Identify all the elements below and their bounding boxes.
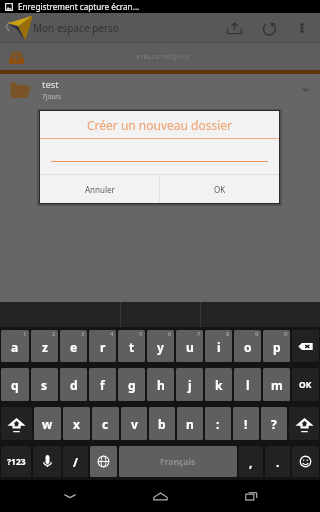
button[interactable]: Upload: [216, 13, 252, 43]
staticText: 1: [23, 330, 27, 338]
button[interactable]: Home: [139, 480, 181, 512]
button[interactable]: Hide keyboard: [49, 480, 91, 512]
staticText: :: [216, 416, 220, 432]
staticText: u: [186, 339, 194, 355]
button[interactable]: t: [118, 330, 145, 362]
button[interactable]: p: [263, 330, 290, 362]
staticText: f: [100, 377, 105, 393]
staticText: Créer un nouveau dossier: [87, 117, 233, 133]
button[interactable]: a: [1, 330, 29, 362]
button[interactable]: More options: [286, 13, 318, 43]
staticText: 3: [81, 330, 85, 338]
staticText: q: [11, 377, 19, 393]
staticText: h: [157, 377, 165, 393]
button[interactable]: z: [31, 330, 58, 362]
button[interactable]: shift: [1, 407, 32, 440]
button[interactable]: Recent apps: [230, 480, 272, 512]
staticText: 4: [110, 330, 114, 338]
staticText: z: [42, 339, 48, 355]
staticText: l: [246, 377, 250, 393]
staticText: b: [158, 416, 166, 432]
button[interactable]: .: [265, 446, 290, 477]
button[interactable]: g: [118, 368, 145, 401]
staticText: 7jours: [42, 92, 62, 101]
staticText: r: [100, 339, 106, 355]
button[interactable]: q: [1, 368, 29, 401]
button[interactable]: Navigate up: [0, 13, 33, 43]
button[interactable]: i: [205, 330, 232, 362]
staticText: 6: [168, 330, 172, 338]
staticText: e: [70, 339, 78, 355]
button[interactable]: c: [92, 407, 119, 440]
button[interactable]: r: [89, 330, 116, 362]
button[interactable]: e: [60, 330, 87, 362]
button[interactable]: test: [0, 74, 320, 105]
staticText: test: [42, 78, 59, 91]
button[interactable]: d: [60, 368, 87, 401]
button[interactable]: Refresh: [252, 13, 286, 43]
button[interactable]: j: [176, 368, 203, 401]
button[interactable]: shift: [289, 407, 319, 440]
button[interactable]: :: [205, 407, 231, 440]
staticText: w: [42, 416, 53, 432]
staticText: ,: [249, 454, 253, 470]
button[interactable]: u: [176, 330, 203, 362]
button[interactable]: !: [233, 407, 259, 440]
staticText: /: [73, 454, 78, 470]
staticText: x: [73, 416, 80, 432]
button[interactable]: h: [147, 368, 174, 401]
staticText: 9: [255, 330, 259, 338]
button[interactable]: BIBLIOTHÈQUES: [0, 43, 320, 70]
button[interactable]: k: [205, 368, 232, 401]
button[interactable]: l: [234, 368, 261, 401]
button[interactable]: b: [149, 407, 175, 440]
button[interactable]: Français: [119, 446, 237, 477]
staticText: g: [128, 377, 136, 393]
staticText: 0: [284, 330, 288, 338]
staticText: o: [244, 339, 252, 355]
button[interactable]: OK: [160, 175, 279, 203]
staticText: .: [276, 454, 280, 470]
button[interactable]: mic: [33, 446, 61, 477]
staticText: !: [244, 416, 248, 432]
button[interactable]: ?123: [1, 446, 31, 477]
staticText: 2: [52, 330, 56, 338]
staticText: OK: [299, 379, 312, 391]
button[interactable]: v: [121, 407, 147, 440]
button[interactable]: Annuler: [40, 175, 159, 203]
staticText: n: [186, 416, 194, 432]
staticText: j: [188, 377, 192, 393]
staticText: 5: [139, 330, 143, 338]
staticText: 8: [226, 330, 230, 338]
button[interactable]: s: [31, 368, 58, 401]
staticText: Français: [160, 456, 196, 468]
staticText: v: [131, 416, 138, 432]
button[interactable]: backspace: [292, 330, 319, 362]
button[interactable]: n: [177, 407, 203, 440]
staticText: s: [41, 377, 48, 393]
button[interactable]: x: [63, 407, 90, 440]
button[interactable]: m: [263, 368, 290, 401]
staticText: m: [271, 377, 283, 393]
staticText: ?: [271, 416, 277, 432]
button[interactable]: OK: [292, 368, 319, 401]
button[interactable]: globe: [90, 446, 117, 477]
staticText: d: [70, 377, 78, 393]
staticText: Enregistrement capture écran...: [18, 1, 140, 12]
staticText: p: [273, 339, 281, 355]
staticText: 7: [197, 330, 201, 338]
button[interactable]: ,: [239, 446, 263, 477]
staticText: BIBLIOTHÈQUES: [136, 53, 191, 60]
button[interactable]: ?: [261, 407, 287, 440]
button[interactable]: y: [147, 330, 174, 362]
staticText: Annuler: [85, 184, 115, 195]
button[interactable]: emoji: [292, 446, 319, 477]
button[interactable]: /: [63, 446, 88, 477]
staticText: a: [11, 339, 19, 355]
button[interactable]: w: [34, 407, 61, 440]
staticText: i: [217, 339, 221, 355]
staticText: ?123: [7, 456, 26, 468]
button[interactable]: f: [89, 368, 116, 401]
button[interactable]: o: [234, 330, 261, 362]
